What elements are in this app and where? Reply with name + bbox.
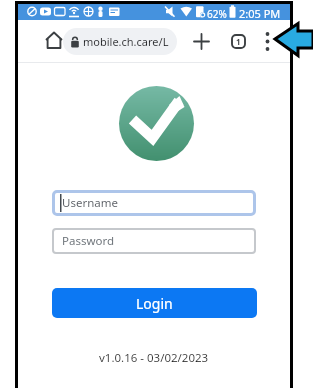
staticText: 2:05 PM [239,6,281,21]
staticText: 62% [207,7,227,21]
button[interactable] [44,31,64,51]
staticText: Login [136,294,173,313]
button[interactable]: 1 [231,34,246,49]
button[interactable]: Password [52,228,256,254]
staticText: 1 [236,36,241,47]
button[interactable]: Login [52,288,257,318]
button[interactable] [193,33,210,50]
staticText: Username [62,195,118,211]
staticText: mobile.ch.care/L [83,34,169,49]
button[interactable]: mobile.ch.care/L [63,28,177,55]
staticText: v1.0.16 - 03/02/2023 [99,350,209,366]
staticText: Password [62,233,115,249]
button[interactable]: Username [52,190,256,216]
button[interactable] [261,30,274,53]
